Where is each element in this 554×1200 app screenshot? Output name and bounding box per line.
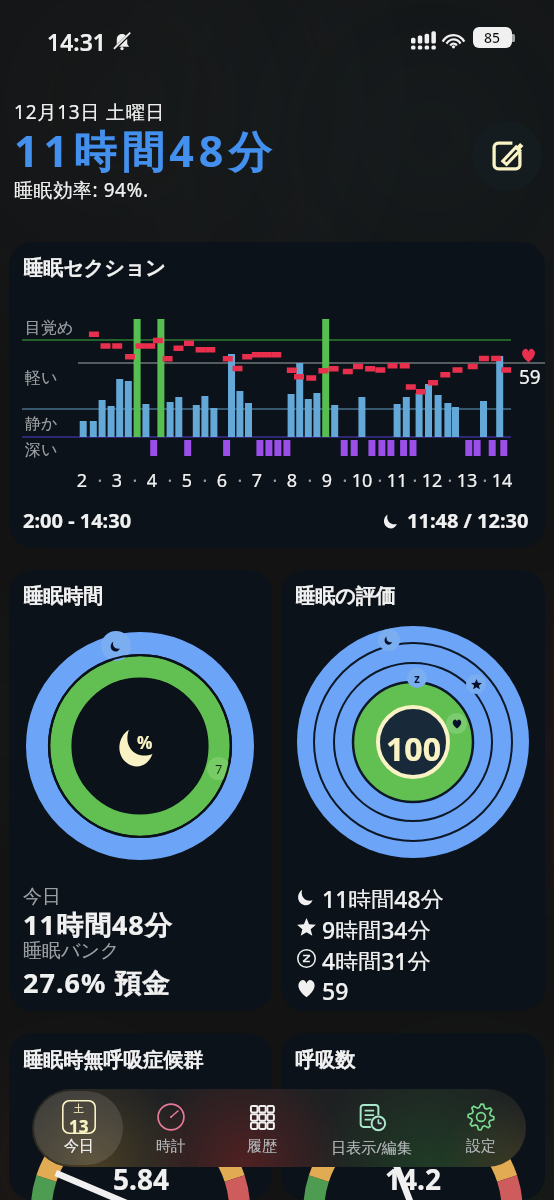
staticText: 59: [322, 975, 349, 1001]
button[interactable]: Edit: [472, 121, 542, 191]
staticText: ·: [338, 468, 352, 493]
staticText: 睡眠時間: [23, 584, 103, 609]
staticText: ·: [128, 468, 142, 493]
button[interactable]: 睡眠の評価: [281, 570, 545, 1011]
staticText: 14:31: [47, 26, 106, 57]
button[interactable]: 時計: [127, 1091, 214, 1165]
staticText: 11時間48分: [322, 883, 444, 909]
staticText: ·: [373, 468, 387, 493]
staticText: 59: [519, 364, 541, 390]
staticText: 8: [278, 468, 306, 493]
staticText: ·: [443, 468, 457, 493]
staticText: 睡眠バンク: [23, 939, 120, 963]
staticText: 7: [215, 760, 223, 778]
button[interactable]: 日表示/編集: [309, 1091, 433, 1165]
staticText: 12: [418, 468, 446, 493]
staticText: 睡眠時無呼吸症候群: [23, 1048, 203, 1073]
staticText: z: [414, 670, 420, 686]
staticText: ·: [233, 468, 247, 493]
staticText: 2:00 - 14:30: [23, 507, 132, 534]
staticText: 睡眠の評価: [295, 584, 396, 609]
staticText: 10: [348, 468, 376, 493]
staticText: 今日: [64, 1137, 94, 1156]
staticText: ·: [198, 468, 212, 493]
button[interactable]: 睡眠時間: [9, 570, 272, 1011]
button[interactable]: 設定: [437, 1091, 524, 1165]
staticText: ·: [303, 468, 317, 493]
staticText: 6: [208, 468, 236, 493]
button[interactable]: 履歴: [218, 1091, 305, 1165]
staticText: 履歴: [247, 1137, 277, 1156]
staticText: 呼吸数: [295, 1048, 355, 1073]
staticText: 4時間31分: [322, 945, 431, 971]
staticText: 日表示/編集: [331, 1137, 412, 1157]
staticText: 27.6% 預金: [23, 964, 171, 1001]
button[interactable]: 土: [34, 1091, 123, 1165]
staticText: 今日: [23, 885, 61, 909]
staticText: 13: [69, 1115, 89, 1134]
staticText: 深い: [25, 440, 58, 460]
staticText: 11:48 / 12:30: [407, 507, 529, 534]
staticText: ·: [268, 468, 282, 493]
staticText: 11時間48分: [14, 121, 277, 180]
staticText: 3: [103, 468, 131, 493]
staticText: ·: [408, 468, 422, 493]
staticText: 7: [243, 468, 271, 493]
staticText: 軽い: [25, 368, 58, 388]
staticText: 5.84: [113, 1160, 169, 1198]
staticText: 4: [138, 468, 166, 493]
staticText: 14: [488, 468, 516, 493]
staticText: 11: [383, 468, 411, 493]
staticText: 9時間34分: [322, 914, 431, 940]
staticText: 5: [173, 468, 201, 493]
staticText: 土: [74, 1102, 84, 1115]
staticText: 13: [453, 468, 481, 493]
staticText: 12月13日 土曜日: [14, 99, 166, 125]
staticText: 設定: [466, 1137, 496, 1156]
staticText: 11時間48分: [23, 906, 173, 943]
staticText: 睡眠セクション: [23, 256, 166, 281]
staticText: 85: [484, 28, 501, 47]
staticText: 目覚め: [25, 318, 74, 338]
staticText: 2: [68, 468, 96, 493]
button[interactable]: 睡眠時無呼吸症候群: [9, 1033, 272, 1200]
button[interactable]: 睡眠セクション: [9, 242, 545, 548]
staticText: 14.2: [385, 1160, 441, 1198]
staticText: ·: [478, 468, 492, 493]
staticText: 100: [386, 727, 441, 771]
staticText: ·: [93, 468, 107, 493]
staticText: 静か: [25, 414, 58, 434]
button[interactable]: 呼吸数: [281, 1033, 545, 1200]
staticText: ·: [163, 468, 177, 493]
staticText: %: [137, 731, 153, 754]
staticText: 睡眠効率: 94%.: [14, 177, 149, 203]
staticText: 時計: [156, 1137, 186, 1156]
staticText: 9: [313, 468, 341, 493]
